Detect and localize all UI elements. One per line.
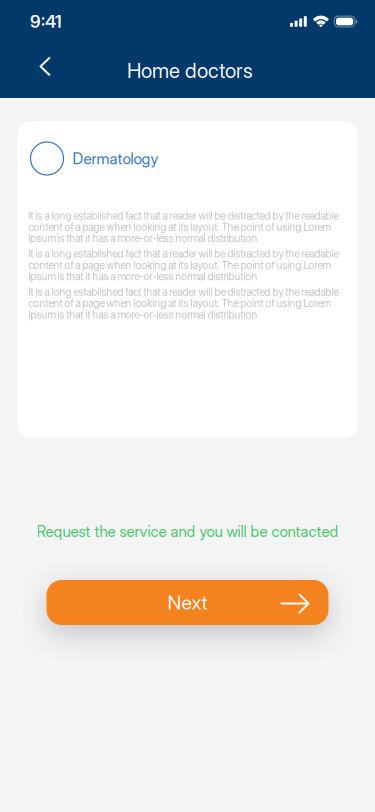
button[interactable]: Back (23, 44, 67, 88)
staticText: Request the service and you will be cont… (36, 522, 338, 541)
button[interactable]: Dermatology (17, 140, 357, 177)
staticText: Home doctors (127, 58, 253, 83)
staticText: Next (167, 591, 207, 614)
staticText: It is a long established fact that a rea… (28, 286, 338, 320)
staticText: 9:41 (30, 11, 62, 32)
button[interactable]: Next (46, 580, 328, 625)
staticText: It is a long established fact that a rea… (28, 210, 338, 244)
staticText: Dermatology (72, 149, 158, 168)
staticText: It is a long established fact that a rea… (28, 248, 338, 282)
